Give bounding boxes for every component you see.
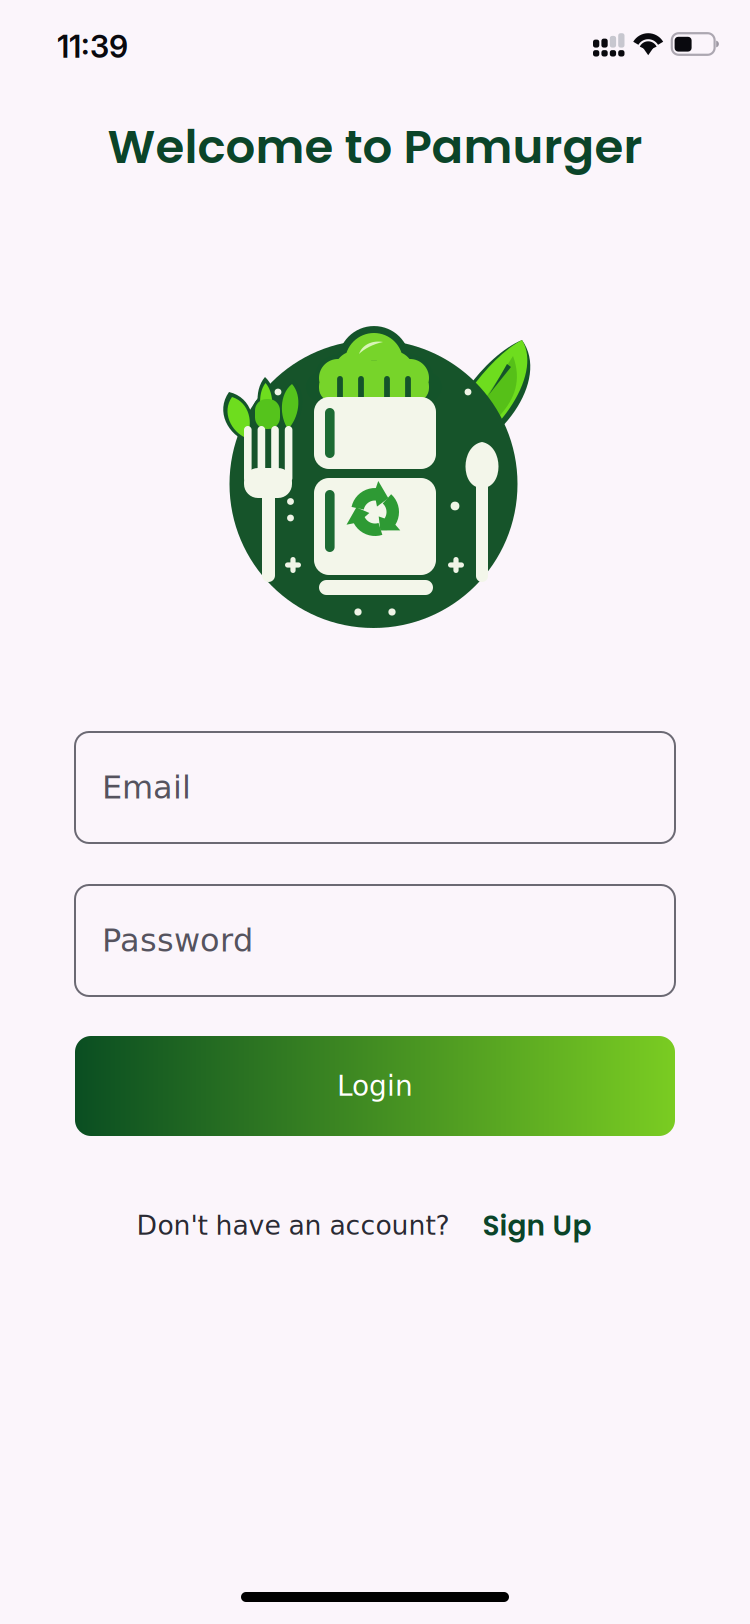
staticText: Don't have an account? bbox=[136, 1210, 449, 1241]
staticText: Sign Up bbox=[482, 1206, 591, 1245]
staticText: Password bbox=[102, 922, 253, 959]
staticText: Email bbox=[102, 769, 191, 806]
button[interactable]: Login bbox=[75, 1036, 675, 1136]
staticText: Welcome to Pamurger bbox=[107, 114, 642, 179]
staticText: Login bbox=[337, 1070, 413, 1102]
staticText: 11:39 bbox=[57, 28, 128, 65]
button[interactable]: Sign Up bbox=[482, 1206, 591, 1245]
